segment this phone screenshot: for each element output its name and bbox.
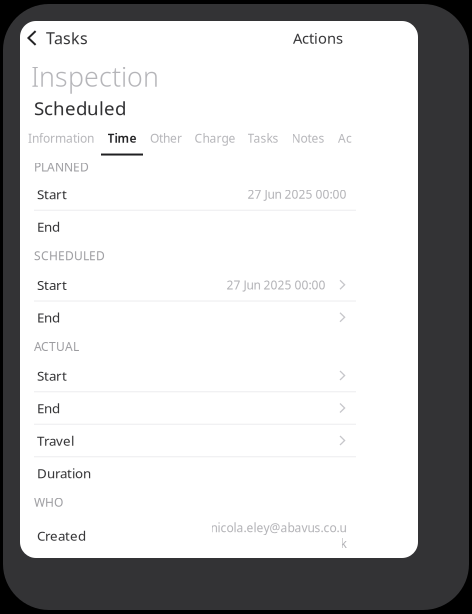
button[interactable]: Start [34,178,356,210]
staticText: Time [107,130,136,146]
staticText: Tasks [46,27,88,49]
staticText: nicola.eley@abavus.co.u​k [210,520,346,551]
button[interactable]: Ac [331,131,359,155]
button[interactable]: Created [34,515,356,555]
staticText: PLANNED [34,159,89,175]
staticText: Scheduled [34,96,126,120]
staticText: Notes [291,130,324,146]
staticText: Tasks [247,130,278,146]
staticText: Ac [338,130,352,146]
staticText: Inspection [31,59,159,94]
button[interactable]: Time [101,131,143,155]
staticText: 27 Jun 2025 00:00 [226,277,325,293]
staticText: SCHEDULED [34,248,105,264]
button[interactable]: End [34,211,356,242]
button[interactable]: Duration [34,457,356,489]
button[interactable]: Tasks [20,24,94,52]
staticText: End [37,308,60,326]
button[interactable]: Information [21,131,101,155]
staticText: 27 Jun 2025 00:00 [247,186,346,202]
staticText: End [37,218,60,235]
staticText: Duration [37,464,91,482]
button[interactable]: Actions [287,24,349,52]
button[interactable]: Notes [285,131,331,155]
staticText: Actions [293,28,343,48]
staticText: Start [37,367,67,384]
button[interactable]: Charge [189,131,241,155]
button[interactable]: Start [34,269,356,300]
button[interactable]: End [34,392,356,424]
staticText: Information [28,130,94,146]
button[interactable]: Other [143,131,189,155]
staticText: Charge [194,130,235,146]
button[interactable]: End [34,301,356,333]
staticText: Other [150,130,182,146]
button[interactable]: Tasks [241,131,285,155]
button[interactable]: Travel [34,425,356,456]
staticText: Created [37,527,86,544]
staticText: ACTUAL [34,338,79,354]
staticText: Travel [37,432,74,449]
staticText: Start [37,185,67,203]
staticText: WHO [34,494,63,510]
staticText: Start [37,276,67,294]
staticText: End [37,399,60,417]
button[interactable]: Start [34,360,356,391]
